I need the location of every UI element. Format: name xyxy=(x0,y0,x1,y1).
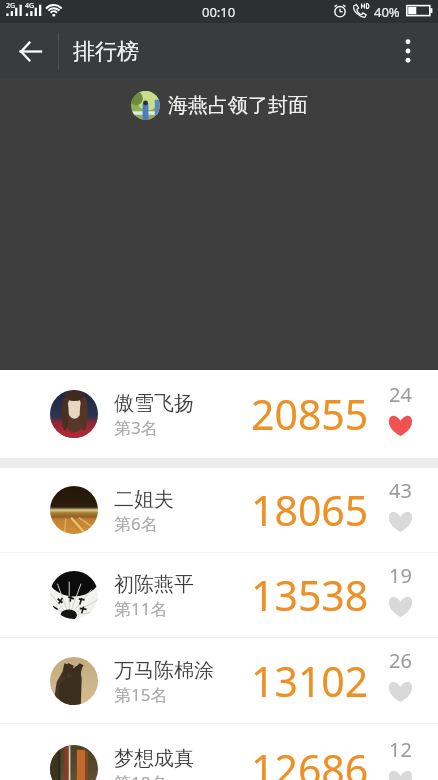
button[interactable]: Like xyxy=(382,381,418,436)
staticText: 万马陈棉涂 xyxy=(114,658,214,683)
button[interactable]: Back xyxy=(10,31,50,71)
button[interactable]: More options xyxy=(388,31,428,71)
staticText: 26 xyxy=(389,647,412,674)
staticText: 海燕占领了封面 xyxy=(168,93,308,118)
staticText: 第11名 xyxy=(114,597,168,620)
staticText: 梦想成真 xyxy=(114,746,194,771)
button[interactable]: 万马陈棉涂 xyxy=(0,638,438,723)
staticText: 傲雪飞扬 xyxy=(114,391,194,416)
staticText: 二姐夫 xyxy=(114,487,174,512)
button[interactable]: Like xyxy=(382,647,418,702)
staticText: 18065 xyxy=(251,482,369,538)
staticText: 第6名 xyxy=(114,512,158,535)
staticText: 13538 xyxy=(251,567,369,623)
staticText: 43 xyxy=(389,477,412,504)
staticText: 19 xyxy=(389,562,412,589)
button[interactable]: 傲雪飞扬 xyxy=(0,370,438,458)
button[interactable]: Like xyxy=(382,477,418,532)
staticText: 2G xyxy=(6,1,16,11)
staticText: 20855 xyxy=(251,386,369,442)
button[interactable]: 初陈燕平 xyxy=(0,553,438,637)
button[interactable]: Like xyxy=(382,736,418,780)
staticText: 40% xyxy=(374,3,400,21)
staticText: 24 xyxy=(389,381,412,408)
button[interactable]: Like xyxy=(382,562,418,617)
staticText: 12 xyxy=(389,736,412,763)
staticText: 排行榜 xyxy=(73,38,139,66)
staticText: 12686 xyxy=(251,741,369,780)
staticText: 第18名 xyxy=(114,771,168,780)
button[interactable]: 梦想成真 xyxy=(0,725,438,780)
staticText: 00:10 xyxy=(202,3,236,21)
button[interactable]: 二姐夫 xyxy=(0,468,438,552)
button[interactable]: 海燕占领了封面 xyxy=(131,91,308,120)
staticText: 初陈燕平 xyxy=(114,572,194,597)
staticText: 4G xyxy=(25,1,35,11)
staticText: 第15名 xyxy=(114,683,168,706)
staticText: 13102 xyxy=(251,653,369,709)
staticText: 第3名 xyxy=(114,416,158,439)
